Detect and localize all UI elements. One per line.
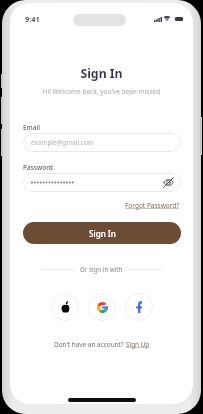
staticText: Sign In xyxy=(10,65,193,82)
button[interactable]: Sign in with Apple xyxy=(51,293,79,321)
staticText: Don't have an account? xyxy=(54,340,126,349)
button[interactable]: example@gmail.com xyxy=(23,133,181,152)
staticText: Password xyxy=(23,163,53,172)
button[interactable]: Forgot Password? xyxy=(125,201,180,210)
staticText: Or sign in with xyxy=(80,265,123,273)
staticText: example@gmail.com xyxy=(31,138,94,147)
staticText: Hi! Welcome back, you've been missed xyxy=(10,87,193,96)
button[interactable]: Sign in with Google xyxy=(88,293,116,321)
button[interactable]: Sign Up xyxy=(126,340,150,349)
button[interactable]: Show password xyxy=(23,173,181,192)
button[interactable]: Sign in with Facebook xyxy=(125,293,153,321)
staticText: 9:41 xyxy=(25,14,40,24)
staticText: Sign In xyxy=(89,228,116,239)
button[interactable]: Show password xyxy=(163,177,174,188)
staticText: Email xyxy=(23,123,41,132)
button[interactable]: Sign In xyxy=(23,222,181,244)
